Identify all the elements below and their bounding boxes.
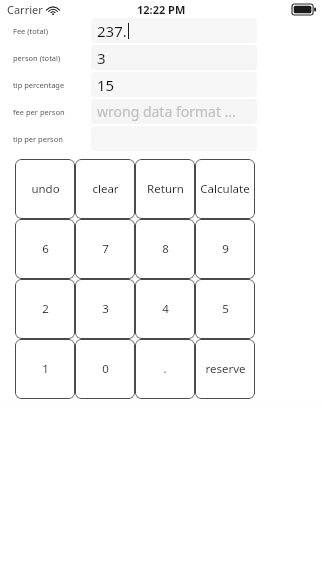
button[interactable]: 6 [15, 219, 75, 279]
staticText: tip per person [13, 134, 63, 144]
staticText: 6 [42, 241, 49, 257]
staticText: tip percentage [13, 80, 65, 90]
staticText: 237. [97, 21, 127, 41]
button[interactable]: 9 [195, 219, 255, 279]
button[interactable]: 237. [91, 18, 257, 43]
button[interactable]: undo [15, 159, 75, 219]
button[interactable]: 15 [91, 72, 257, 97]
staticText: 5 [222, 301, 229, 317]
button[interactable]: 1 [15, 339, 75, 399]
staticText: 2 [42, 301, 49, 317]
button[interactable]: 2 [15, 279, 75, 339]
staticText: 12:22 PM [137, 2, 186, 17]
staticText: clear [92, 181, 119, 197]
staticText: 3 [97, 48, 106, 68]
button[interactable]: 8 [135, 219, 195, 279]
staticText: 1 [42, 361, 49, 377]
button[interactable]: reserve [195, 339, 255, 399]
button[interactable]: 3 [91, 45, 257, 70]
staticText: reserve [205, 361, 246, 377]
staticText: 0 [102, 361, 109, 377]
staticText: . [163, 361, 167, 377]
button[interactable]: . [135, 339, 195, 399]
staticText: person (total) [13, 53, 61, 63]
staticText: fee per person [13, 107, 65, 117]
staticText: Calculate [200, 181, 250, 197]
staticText: Return [147, 181, 184, 197]
button[interactable]: 4 [135, 279, 195, 339]
staticText: 3 [102, 301, 109, 317]
button[interactable]: Return [135, 159, 195, 219]
button[interactable]: clear [75, 159, 135, 219]
button[interactable]: 0 [75, 339, 135, 399]
button[interactable]: wrong data format ... [91, 99, 257, 124]
staticText: 8 [162, 241, 169, 257]
staticText: undo [31, 181, 60, 197]
button[interactable]: 7 [75, 219, 135, 279]
button[interactable]: Calculate [195, 159, 255, 219]
staticText: 7 [102, 241, 109, 257]
button[interactable]: 5 [195, 279, 255, 339]
staticText: 9 [222, 241, 229, 257]
staticText: 15 [97, 75, 115, 95]
staticText: Carrier [7, 2, 43, 17]
staticText: Fee (total) [13, 26, 48, 36]
staticText: 4 [162, 301, 169, 317]
staticText: wrong data format ... [97, 102, 236, 121]
button[interactable]: 3 [75, 279, 135, 339]
